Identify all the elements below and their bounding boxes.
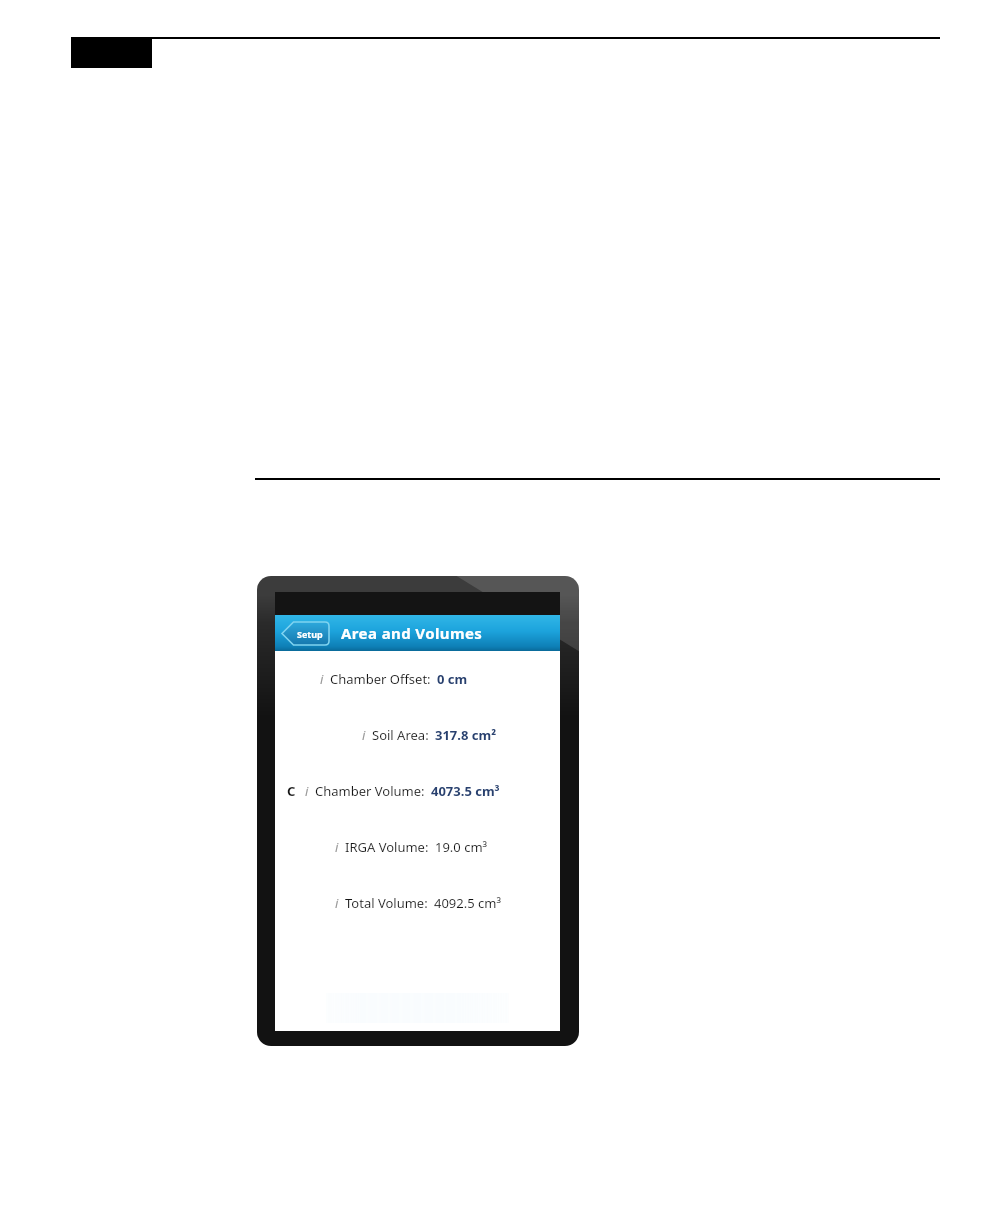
staticText: 19.0 cm³ bbox=[435, 838, 488, 856]
staticText: Chamber Volume: bbox=[315, 782, 425, 800]
staticText: 317.8 cm² bbox=[435, 726, 497, 744]
staticText: C bbox=[287, 782, 296, 800]
staticText: Area and Volumes bbox=[341, 623, 483, 643]
staticText: IRGA Volume: bbox=[345, 838, 429, 856]
staticText: 4073.5 cm³ bbox=[431, 782, 500, 800]
button[interactable]: Setup, back bbox=[282, 622, 329, 645]
staticText: Setup bbox=[297, 628, 323, 640]
button[interactable]: C bbox=[275, 780, 560, 802]
button[interactable]: i bbox=[275, 668, 560, 690]
staticText: i bbox=[362, 726, 366, 744]
button[interactable]: i bbox=[275, 836, 560, 858]
staticText: Chamber Offset: bbox=[330, 670, 431, 688]
staticText: i bbox=[335, 838, 339, 856]
staticText: i bbox=[305, 782, 309, 800]
staticText: i bbox=[320, 670, 324, 688]
staticText: 0 cm bbox=[437, 670, 468, 688]
staticText: 4092.5 cm³ bbox=[434, 894, 501, 912]
button[interactable]: i bbox=[275, 892, 560, 914]
staticText: i bbox=[335, 894, 339, 912]
button[interactable]: i bbox=[275, 724, 560, 746]
staticText: Soil Area: bbox=[372, 726, 429, 744]
staticText: Total Volume: bbox=[345, 894, 428, 912]
